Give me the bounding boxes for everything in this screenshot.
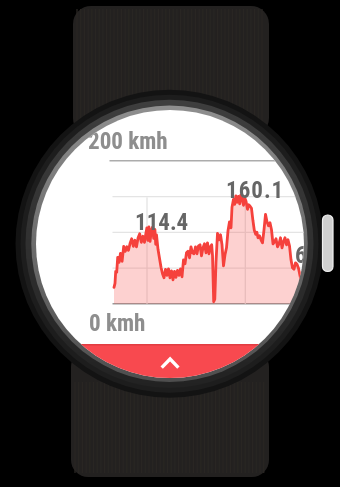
staticText: 114.4 bbox=[135, 209, 189, 236]
staticText: 160.1 bbox=[226, 177, 285, 204]
staticText: 0 kmh bbox=[89, 310, 146, 337]
staticText: 67 bbox=[295, 242, 304, 269]
button[interactable] bbox=[36, 344, 304, 378]
staticText: 200 kmh bbox=[88, 128, 168, 155]
